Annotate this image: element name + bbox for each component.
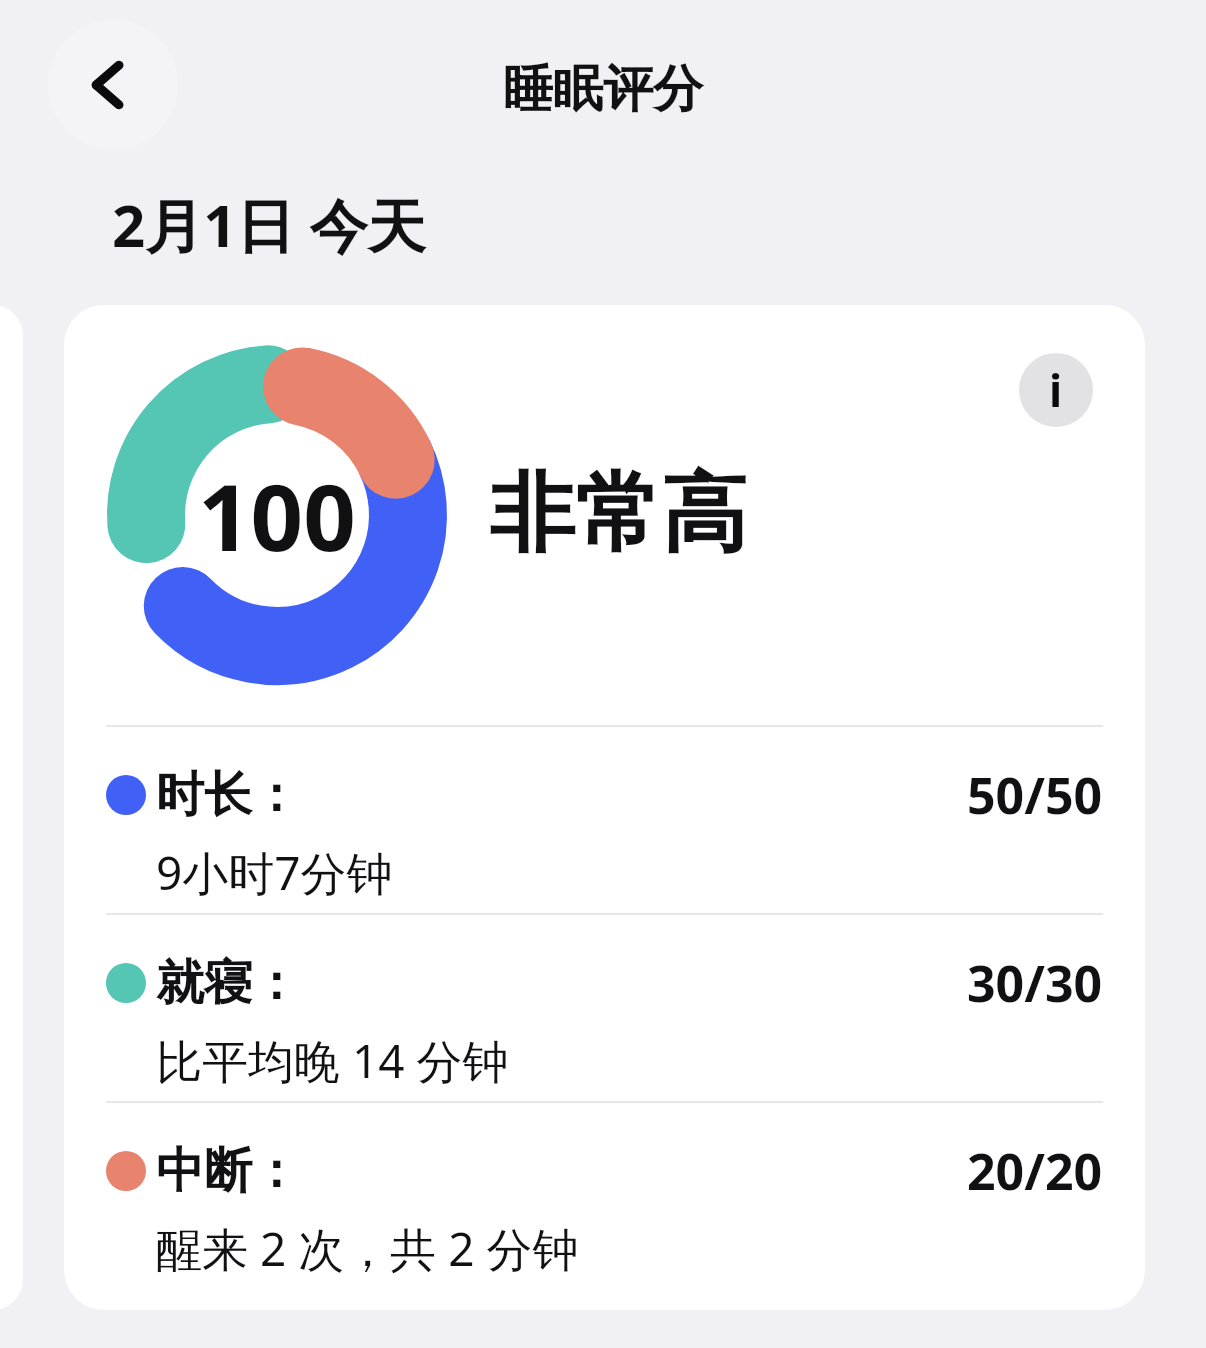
staticText: 50/50 — [967, 761, 1103, 829]
button[interactable]: 中断： — [64, 1101, 1145, 1289]
staticText: 醒来 2 次，共 2 分钟 — [156, 1217, 579, 1280]
staticText: 就寝： — [156, 953, 300, 1013]
staticText: 睡眠评分 — [0, 58, 1206, 121]
button[interactable]: 100 — [64, 305, 1145, 1310]
staticText: 中断： — [156, 1141, 300, 1201]
button[interactable]: 时长： — [64, 725, 1145, 913]
staticText: 时长： — [156, 765, 300, 825]
button[interactable]: 返回 — [48, 20, 178, 150]
staticText: 20/20 — [967, 1137, 1103, 1205]
staticText: i — [1049, 360, 1063, 420]
staticText: 30/30 — [967, 949, 1103, 1017]
staticText: 非常高 — [489, 460, 747, 568]
staticText: 2月1日 今天 — [112, 185, 426, 264]
button[interactable]: 信息 — [1019, 353, 1093, 427]
staticText: 100 — [198, 453, 356, 578]
staticText: 比平均晚 14 分钟 — [156, 1029, 509, 1092]
staticText: 9小时7分钟 — [156, 841, 393, 904]
button[interactable]: 就寝： — [64, 913, 1145, 1101]
